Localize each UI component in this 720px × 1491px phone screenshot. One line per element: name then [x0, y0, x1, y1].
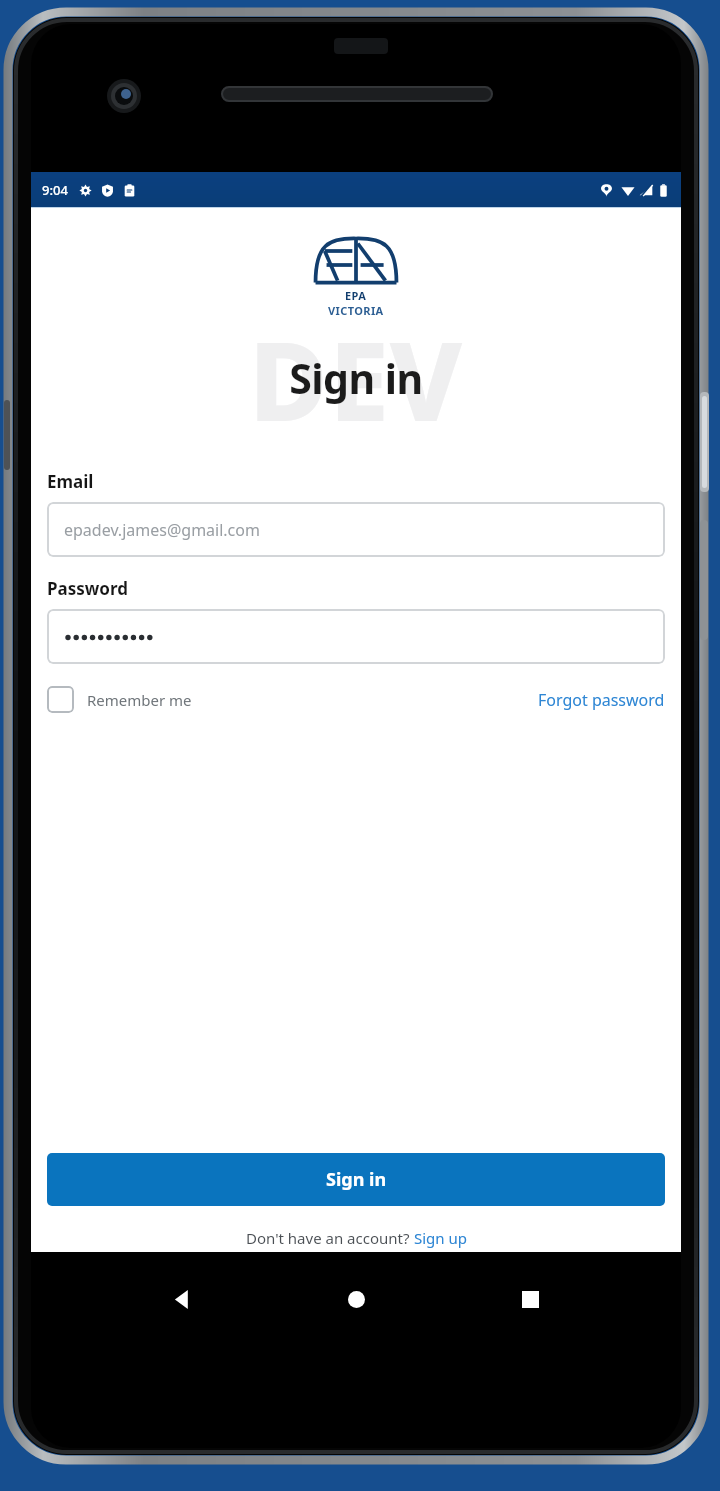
- button[interactable]: [47, 609, 665, 664]
- staticText: Sign up: [414, 1228, 467, 1248]
- button[interactable]: Forgot password: [538, 689, 665, 711]
- staticText: EPA: [345, 288, 367, 303]
- button[interactable]: Home: [333, 1276, 379, 1322]
- staticText: epadev.james@gmail.com: [64, 519, 260, 541]
- staticText: DEV: [31, 306, 681, 453]
- staticText: Email: [47, 470, 94, 493]
- button[interactable]: Sign in: [47, 1153, 665, 1206]
- staticText: Remember me: [87, 690, 192, 710]
- staticText: Don't have an account?: [246, 1228, 414, 1248]
- button[interactable]: epadev.james@gmail.com: [47, 502, 665, 557]
- staticText: Sign in: [31, 350, 681, 406]
- button[interactable]: Remember me: [47, 686, 192, 713]
- staticText: Sign in: [326, 1167, 387, 1192]
- staticText: 9:04: [42, 181, 68, 199]
- staticText: Forgot password: [538, 689, 665, 711]
- button[interactable]: Recent apps: [507, 1276, 553, 1322]
- button[interactable]: Sign up: [414, 1228, 467, 1248]
- staticText: Password: [47, 577, 128, 600]
- staticText: VICTORIA: [328, 303, 384, 318]
- button[interactable]: Back: [159, 1276, 205, 1322]
